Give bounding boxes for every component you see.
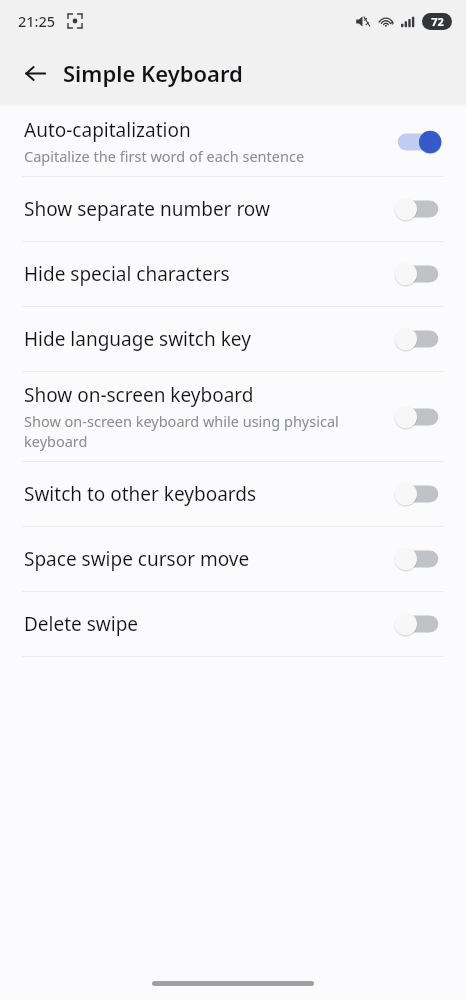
staticText: Delete swipe — [24, 611, 139, 637]
staticText: Space swipe cursor move — [24, 546, 250, 572]
staticText: Show on-screen keyboard — [24, 382, 254, 408]
button[interactable]: Show on-screen keyboard — [0, 372, 466, 461]
button[interactable]: Toggle off — [392, 542, 444, 576]
button[interactable]: Space swipe cursor move — [0, 527, 466, 591]
staticText: Hide special characters — [24, 261, 230, 287]
button[interactable]: Toggle off — [392, 257, 444, 291]
staticText: Show on-screen keyboard while using phys… — [24, 411, 378, 451]
staticText: Show separate number row — [24, 196, 270, 222]
staticText: 72 — [431, 14, 444, 29]
button[interactable]: Toggle off — [392, 607, 444, 641]
button[interactable]: Toggle off — [392, 477, 444, 511]
button[interactable]: Toggle on — [392, 125, 444, 159]
staticText: Switch to other keyboards — [24, 481, 257, 507]
button[interactable]: Hide special characters — [0, 242, 466, 306]
button[interactable]: Delete swipe — [0, 592, 466, 656]
button[interactable]: Switch to other keyboards — [0, 462, 466, 526]
button[interactable]: Toggle off — [392, 400, 444, 434]
button[interactable]: Show separate number row — [0, 177, 466, 241]
button[interactable]: Back — [14, 52, 56, 94]
staticText: Simple Keyboard — [63, 58, 243, 88]
button[interactable]: Toggle off — [392, 322, 444, 356]
button[interactable]: Toggle off — [392, 192, 444, 226]
staticText: 21:25 — [18, 11, 56, 31]
button[interactable]: Hide language switch key — [0, 307, 466, 371]
staticText: Hide language switch key — [24, 326, 251, 352]
button[interactable]: Auto-capitalization — [0, 107, 466, 176]
staticText: Capitalize the first word of each senten… — [24, 146, 305, 166]
staticText: Auto-capitalization — [24, 117, 191, 143]
